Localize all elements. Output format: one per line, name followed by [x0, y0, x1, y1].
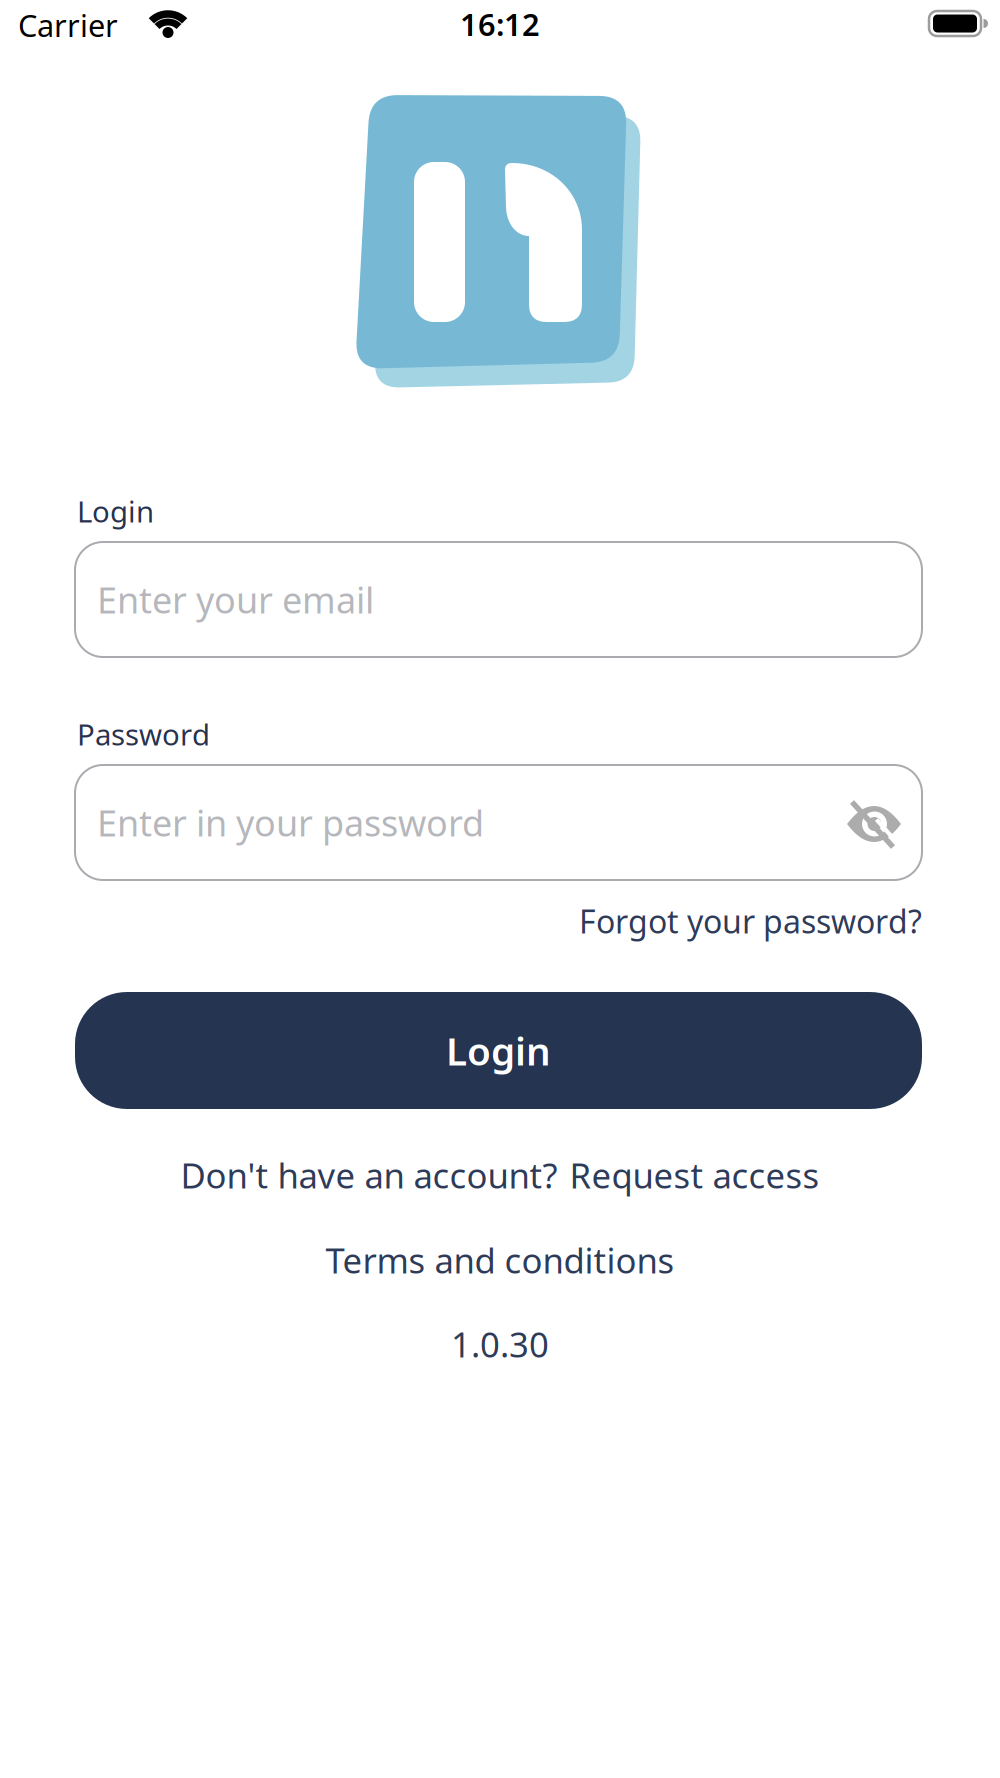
- staticText: Request access: [569, 1152, 819, 1198]
- staticText: Don't have an account?: [180, 1152, 557, 1198]
- staticText: 1.0.30: [451, 1321, 549, 1367]
- staticText: Login: [446, 1025, 551, 1076]
- button[interactable]: Enter in your password: [75, 765, 922, 880]
- button[interactable]: Forgot your password?: [422, 897, 922, 945]
- staticText: Enter your email: [97, 576, 374, 623]
- button[interactable]: Show password: [842, 791, 906, 855]
- button[interactable]: Enter your email: [75, 542, 922, 657]
- staticText: Terms and conditions: [325, 1237, 674, 1283]
- staticText: Login: [77, 491, 154, 530]
- staticText: Password: [77, 714, 210, 753]
- staticText: Enter in your password: [97, 799, 484, 846]
- button[interactable]: Terms and conditions: [325, 1237, 674, 1283]
- staticText: Forgot your password?: [579, 900, 922, 942]
- button[interactable]: Login: [75, 992, 922, 1109]
- button[interactable]: Request access: [569, 1152, 819, 1198]
- staticText: 16:12: [460, 4, 540, 44]
- staticText: Carrier: [18, 5, 118, 45]
